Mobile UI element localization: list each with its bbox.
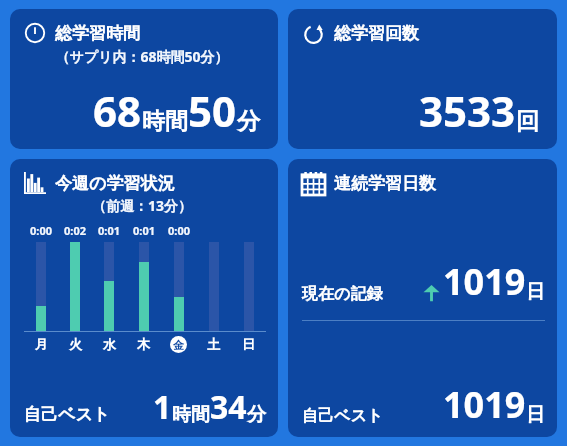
staticText: 0:01 (98, 223, 120, 238)
other: Refresh (302, 22, 325, 45)
other: Clock (24, 22, 46, 44)
staticText: 連続学習日数 (334, 173, 436, 194)
staticText: 自己ベスト (302, 406, 384, 426)
staticText: 時間 (172, 403, 210, 427)
staticText: 日 (526, 280, 545, 304)
staticText: 0:02 (64, 223, 86, 238)
staticText: 3533 (419, 82, 516, 139)
staticText: 回 (516, 107, 539, 136)
staticText: 日 (242, 336, 255, 352)
staticText: 68 (93, 82, 142, 139)
staticText: 木 (137, 336, 150, 352)
staticText: 今週の学習状況 (55, 173, 175, 194)
staticText: 金 (173, 338, 184, 352)
button[interactable]: Calendar (288, 159, 557, 437)
staticText: 1 (153, 385, 172, 429)
staticText: 現在の記録 (302, 284, 423, 304)
other: Calendar (302, 172, 325, 195)
staticText: 分 (237, 107, 260, 136)
staticText: 1019 (443, 257, 526, 306)
button[interactable]: Chart (10, 159, 278, 437)
staticText: 総学習回数 (334, 23, 419, 44)
staticText: 日 (526, 403, 545, 427)
staticText: 土 (207, 336, 220, 352)
staticText: 自己ベスト (24, 404, 111, 425)
staticText: 水 (103, 336, 116, 352)
staticText: 総学習時間 (55, 23, 140, 44)
button[interactable]: Refresh (288, 9, 557, 149)
staticText: 0:01 (133, 223, 155, 238)
staticText: 50 (188, 82, 237, 139)
staticText: 0:00 (168, 223, 190, 238)
staticText: 分 (247, 403, 266, 427)
staticText: （前週：13分） (24, 196, 260, 215)
staticText: 時間 (142, 107, 188, 136)
button[interactable]: Clock (10, 9, 278, 149)
other: Chart (24, 172, 46, 194)
staticText: 34 (210, 385, 247, 429)
staticText: （サプリ内：68時間50分） (24, 47, 260, 66)
staticText: 火 (69, 336, 82, 352)
staticText: 0:00 (30, 223, 52, 238)
staticText: 月 (35, 336, 48, 352)
staticText: 1019 (443, 380, 526, 429)
